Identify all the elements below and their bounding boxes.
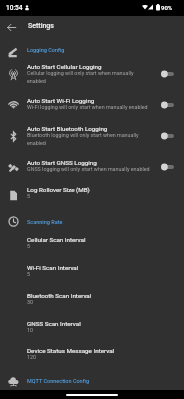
staticText: 10 bbox=[27, 327, 34, 333]
button[interactable]: Bluetooth Scan Interval bbox=[0, 288, 184, 306]
button[interactable]: Auto Start Bluetooth Logging bbox=[0, 121, 184, 145]
staticText: Auto Start GNSS Logging bbox=[27, 159, 97, 166]
button[interactable]: MQTT Connection Config bbox=[0, 373, 184, 389]
button[interactable]: Logging Config bbox=[0, 42, 184, 58]
staticText: 5 bbox=[27, 193, 31, 199]
button[interactable]: Scanning Rate bbox=[0, 214, 184, 230]
button[interactable]: Cellular Scan Interval bbox=[0, 232, 184, 250]
staticText: Wi-Fi Scan Interval bbox=[27, 264, 79, 271]
button[interactable]: GNSS Scan Interval bbox=[0, 316, 184, 334]
staticText: Device Status Message Interval bbox=[27, 347, 115, 354]
staticText: GNSS logging will only start when manual… bbox=[27, 166, 150, 172]
staticText: MQTT Connection Config bbox=[27, 378, 90, 384]
staticText: Log Rollover Size (MB) bbox=[27, 186, 90, 193]
button[interactable]: Toggle bbox=[158, 158, 180, 176]
staticText: Auto Start Cellular Logging bbox=[27, 63, 102, 70]
staticText: Bluetooth Scan Interval bbox=[27, 292, 92, 299]
staticText: 120 bbox=[27, 354, 37, 360]
staticText: Auto Start Wi-Fi Logging bbox=[27, 97, 95, 104]
staticText: Cellular logging will only start when ma… bbox=[27, 70, 152, 84]
staticText: Scanning Rate bbox=[27, 219, 63, 225]
staticText: Wi-Fi logging will only start when manua… bbox=[27, 104, 148, 110]
staticText: GNSS Scan Interval bbox=[27, 320, 81, 327]
button[interactable]: Log Rollover Size (MB) bbox=[0, 182, 184, 200]
staticText: 5 bbox=[27, 271, 31, 277]
staticText: 30 bbox=[27, 299, 34, 305]
button[interactable]: Back bbox=[2, 18, 20, 36]
button[interactable]: Wi-Fi Scan Interval bbox=[0, 260, 184, 278]
staticText: Logging Config bbox=[27, 47, 65, 53]
staticText: Settings bbox=[28, 22, 54, 30]
button[interactable]: Auto Start Wi-Fi Logging bbox=[0, 93, 184, 111]
staticText: 90% bbox=[161, 4, 173, 11]
staticText: Bluetooth logging will only start when m… bbox=[27, 132, 152, 146]
button[interactable]: Toggle bbox=[158, 65, 180, 83]
staticText: Cellular Scan Interval bbox=[27, 236, 86, 243]
staticText: 5 bbox=[27, 243, 31, 249]
staticText: 10:54 bbox=[6, 4, 23, 12]
button[interactable]: Auto Start Cellular Logging bbox=[0, 59, 184, 83]
button[interactable]: Device Status Message Interval bbox=[0, 343, 184, 361]
button[interactable]: Toggle bbox=[158, 127, 180, 145]
staticText: Auto Start Bluetooth Logging bbox=[27, 125, 108, 132]
button[interactable]: Toggle bbox=[158, 96, 180, 114]
button[interactable]: Auto Start GNSS Logging bbox=[0, 155, 184, 173]
